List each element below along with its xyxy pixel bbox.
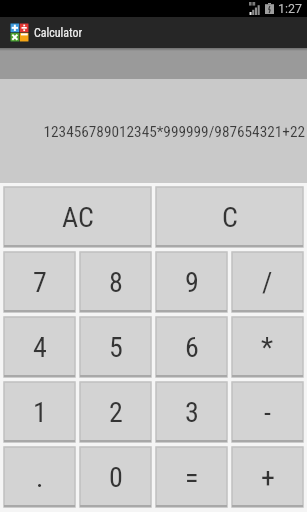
button[interactable]: AC	[4, 187, 151, 247]
button[interactable]: 1	[4, 382, 75, 442]
staticText: 1:27	[278, 1, 303, 16]
staticText: 7	[33, 266, 47, 299]
button[interactable]: C	[156, 187, 303, 247]
button[interactable]: 5	[80, 317, 151, 377]
staticText: =	[185, 461, 199, 494]
button[interactable]: 0	[80, 447, 151, 507]
button[interactable]: .	[4, 447, 75, 507]
staticText: *	[261, 331, 274, 364]
staticText: 2	[109, 396, 123, 429]
button[interactable]: =	[156, 447, 227, 507]
button[interactable]: /	[232, 252, 303, 312]
button[interactable]: +	[232, 447, 303, 507]
button[interactable]: *	[232, 317, 303, 377]
staticText: 1	[33, 396, 47, 429]
staticText: 9	[185, 266, 199, 299]
staticText: 3	[185, 396, 199, 429]
button[interactable]: 7	[4, 252, 75, 312]
staticText: C	[222, 201, 238, 234]
staticText: 5	[109, 331, 123, 364]
staticText: -	[264, 396, 271, 429]
staticText: /	[262, 266, 273, 299]
staticText: .	[36, 461, 44, 494]
button[interactable]: 6	[156, 317, 227, 377]
button[interactable]: 3	[156, 382, 227, 442]
staticText: 6	[185, 331, 199, 364]
button[interactable]: -	[232, 382, 303, 442]
staticText: 8	[109, 266, 123, 299]
button[interactable]: 4	[4, 317, 75, 377]
staticText: 123456789012345*999999/987654321+22	[43, 123, 305, 141]
staticText: 4	[33, 331, 47, 364]
staticText: +	[261, 461, 275, 494]
staticText: Calculator	[34, 25, 83, 40]
button[interactable]: 9	[156, 252, 227, 312]
staticText: AC	[62, 201, 94, 234]
staticText: 0	[109, 461, 123, 494]
button[interactable]: 2	[80, 382, 151, 442]
button[interactable]: 8	[80, 252, 151, 312]
